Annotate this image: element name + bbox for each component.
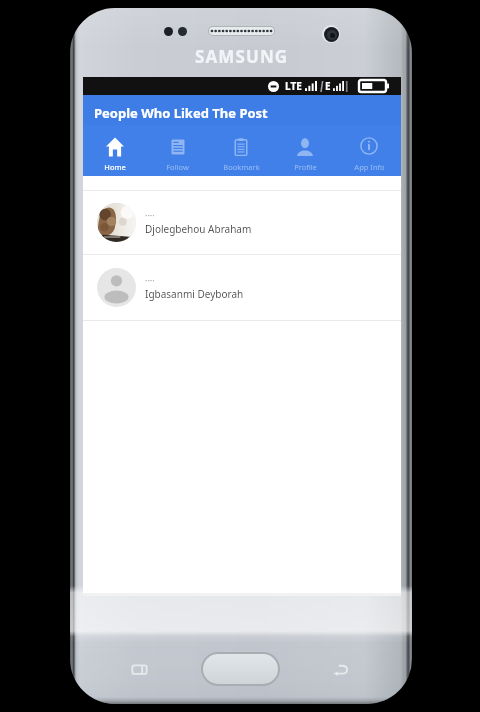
button[interactable]: Follow <box>146 125 209 176</box>
button[interactable]: Bookmark <box>209 125 273 176</box>
button[interactable]: ···· <box>83 191 401 254</box>
staticText: Djolegbehou Abraham <box>145 222 252 236</box>
staticText: Profile <box>294 162 317 172</box>
staticText: LTE <box>285 79 302 93</box>
staticText: ···· <box>145 274 155 286</box>
button[interactable]: Home <box>83 125 146 176</box>
staticText: People Who Liked The Post <box>94 104 268 122</box>
staticText: ···· <box>145 209 155 221</box>
staticText: Follow <box>166 162 189 172</box>
button[interactable]: App Info <box>337 125 401 176</box>
button[interactable]: Profile <box>273 125 337 176</box>
staticText: SAMSUNG <box>195 45 289 68</box>
staticText: Bookmark <box>223 162 260 172</box>
staticText: Igbasanmi Deyborah <box>145 287 244 301</box>
staticText: Home <box>104 162 126 172</box>
button[interactable]: Home <box>203 654 278 684</box>
button[interactable]: Back <box>332 661 349 678</box>
staticText: App Info <box>354 162 385 172</box>
button[interactable]: ···· <box>83 255 401 320</box>
button[interactable]: Recents <box>131 661 148 678</box>
staticText: E <box>325 79 331 93</box>
